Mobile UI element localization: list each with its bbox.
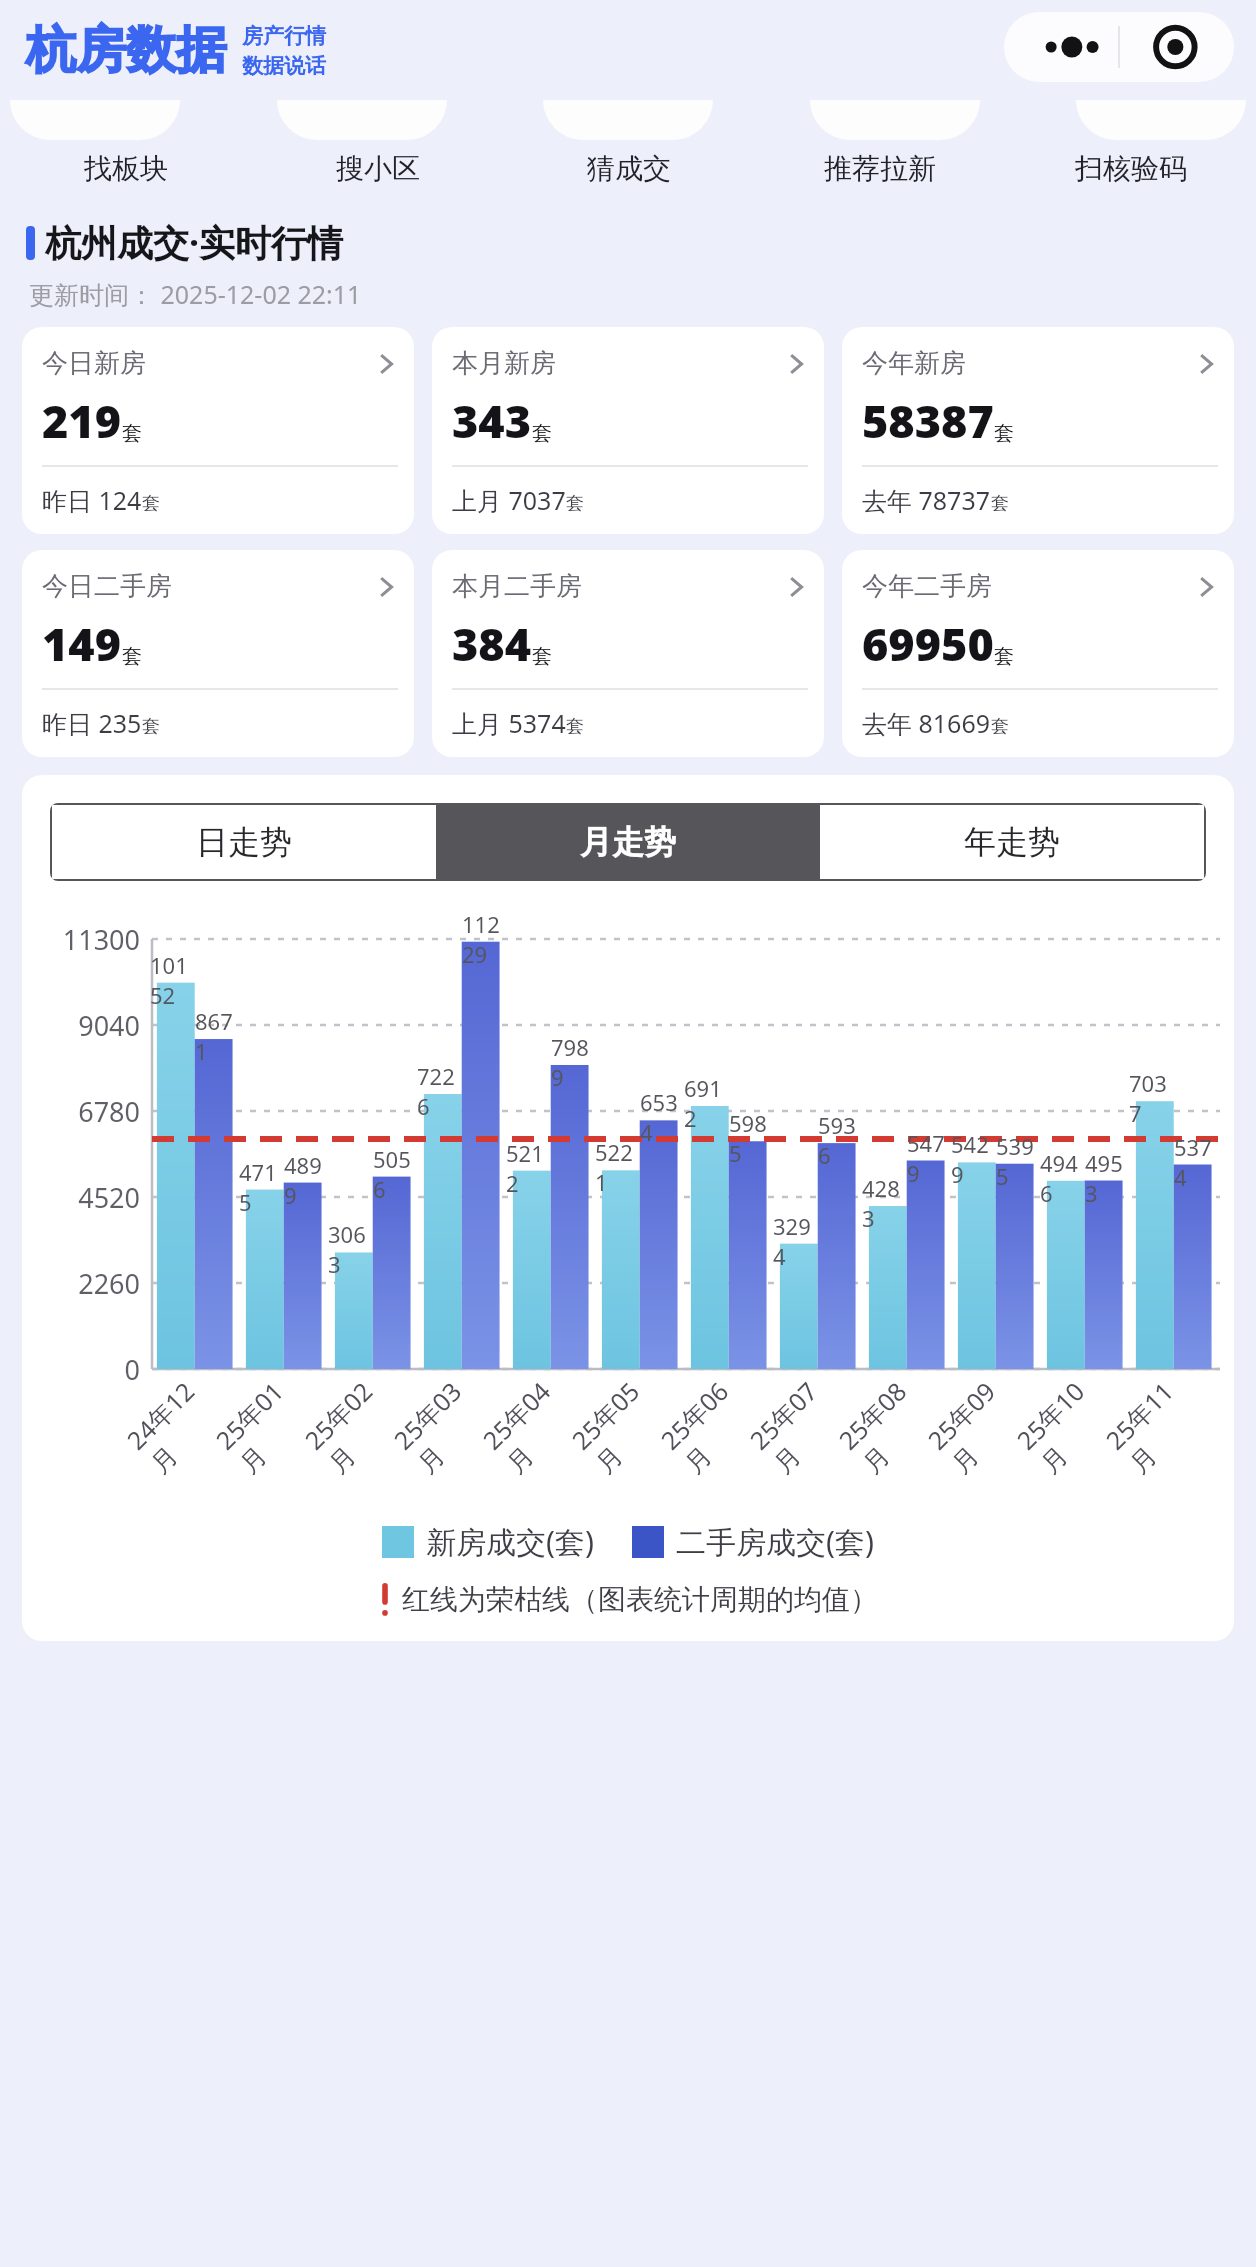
staticText: 10152	[150, 950, 195, 1010]
staticText: 套	[532, 421, 552, 446]
staticText: 25年06月	[653, 1369, 764, 1480]
button[interactable]: 月走势	[436, 805, 820, 879]
button[interactable]: 扫核验码	[1005, 151, 1256, 186]
staticText: 149	[42, 613, 122, 674]
staticText: 25年07月	[742, 1369, 853, 1480]
staticText: 5212	[506, 1138, 551, 1198]
staticText: 今日二手房	[42, 570, 172, 603]
staticText: 4946	[1040, 1148, 1085, 1208]
staticText: 58387	[862, 390, 994, 451]
staticText: 房产行情	[242, 23, 326, 49]
button[interactable]: 猜成交	[503, 151, 754, 186]
staticText: 日走势	[196, 822, 292, 862]
staticText: 219	[42, 390, 122, 451]
staticText: 6780	[22, 1093, 140, 1130]
staticText: 3294	[773, 1211, 818, 1271]
staticText: 4715	[239, 1157, 284, 1217]
staticText: 25年09月	[920, 1369, 1031, 1480]
staticText: 套	[532, 644, 552, 669]
staticText: 套	[991, 492, 1009, 515]
staticText: 套	[142, 492, 160, 515]
staticText: 二手房成交(套)	[676, 1521, 874, 1562]
staticText: 去年 81669	[862, 706, 991, 740]
staticText: 杭州成交·实时行情	[45, 218, 344, 267]
staticText: 25年01月	[208, 1369, 319, 1480]
staticText: 昨日 235	[42, 706, 142, 740]
staticText: 0	[22, 1351, 140, 1388]
button[interactable]: 本月二手房	[432, 550, 824, 757]
staticText: 找板块	[84, 151, 168, 186]
staticText: 套	[142, 715, 160, 738]
staticText: 5374	[1174, 1132, 1219, 1192]
staticText: 4520	[22, 1179, 140, 1216]
button[interactable]: 今年二手房	[842, 550, 1234, 757]
staticText: 5985	[729, 1108, 774, 1168]
button[interactable]: 年走势	[820, 805, 1204, 879]
button[interactable]: 今日二手房	[22, 550, 414, 757]
button[interactable]: 推荐拉新	[754, 151, 1005, 186]
staticText: 套	[994, 421, 1014, 446]
staticText: 384	[452, 613, 532, 674]
button[interactable]: 今年新房	[842, 327, 1234, 534]
staticText: 7226	[417, 1061, 462, 1121]
staticText: 5056	[373, 1144, 418, 1204]
staticText: 今年新房	[862, 347, 966, 380]
staticText: 新房成交(套)	[426, 1521, 594, 1562]
staticText: 11300	[22, 921, 140, 958]
staticText: 25年11月	[1098, 1369, 1209, 1480]
staticText: 2260	[22, 1265, 140, 1302]
staticText: 套	[566, 492, 584, 515]
staticText: 69950	[862, 613, 994, 674]
staticText: 6534	[640, 1087, 685, 1147]
staticText: 套	[566, 715, 584, 738]
staticText: 7037	[1129, 1068, 1174, 1128]
staticText: 5479	[907, 1128, 952, 1188]
staticText: 套	[991, 715, 1009, 738]
button[interactable]: Mini program menu	[1004, 12, 1234, 82]
staticText: 月走势	[580, 822, 676, 862]
staticText: 5221	[595, 1137, 640, 1197]
staticText: 扫核验码	[1075, 151, 1187, 186]
button[interactable]: 日走势	[52, 805, 436, 879]
button[interactable]: 找板块	[0, 151, 252, 186]
staticText: 343	[452, 390, 532, 451]
staticText: 24年12月	[119, 1369, 230, 1480]
staticText: 红线为荣枯线（图表统计周期的均值）	[402, 1582, 878, 1617]
staticText: 本月二手房	[452, 570, 582, 603]
staticText: 推荐拉新	[824, 151, 936, 186]
staticText: 25年02月	[297, 1369, 408, 1480]
staticText: 4953	[1085, 1148, 1130, 1208]
staticText: 25年04月	[475, 1369, 586, 1480]
staticText: 套	[122, 644, 142, 669]
staticText: 年走势	[964, 822, 1060, 862]
staticText: 杭房数据	[26, 19, 226, 82]
staticText: 8671	[195, 1006, 240, 1066]
staticText: 5395	[996, 1131, 1041, 1191]
staticText: 25年08月	[831, 1369, 942, 1480]
button[interactable]: 今日新房	[22, 327, 414, 534]
staticText: 3063	[328, 1219, 373, 1279]
staticText: 4899	[284, 1150, 329, 1210]
staticText: 9040	[22, 1007, 140, 1044]
staticText: 本月新房	[452, 347, 556, 380]
button[interactable]: 本月新房	[432, 327, 824, 534]
staticText: 5429	[951, 1129, 996, 1189]
staticText: 5936	[818, 1110, 863, 1170]
staticText: 25年03月	[386, 1369, 497, 1480]
staticText: 25年10月	[1009, 1369, 1120, 1480]
staticText: 数据说话	[242, 53, 326, 79]
staticText: 套	[122, 421, 142, 446]
staticText: 猜成交	[587, 151, 671, 186]
staticText: 上月 5374	[452, 706, 566, 740]
staticText: 去年 78737	[862, 483, 991, 517]
staticText: 11229	[462, 909, 507, 969]
staticText: 4283	[862, 1173, 907, 1233]
staticText: 今日新房	[42, 347, 146, 380]
staticText: 搜小区	[336, 151, 420, 186]
button[interactable]: 搜小区	[252, 151, 503, 186]
staticText: 25年05月	[564, 1369, 675, 1480]
staticText: 6912	[684, 1073, 729, 1133]
staticText: 套	[994, 644, 1014, 669]
staticText: 更新时间： 2025-12-02 22:11	[29, 277, 362, 311]
staticText: 上月 7037	[452, 483, 566, 517]
